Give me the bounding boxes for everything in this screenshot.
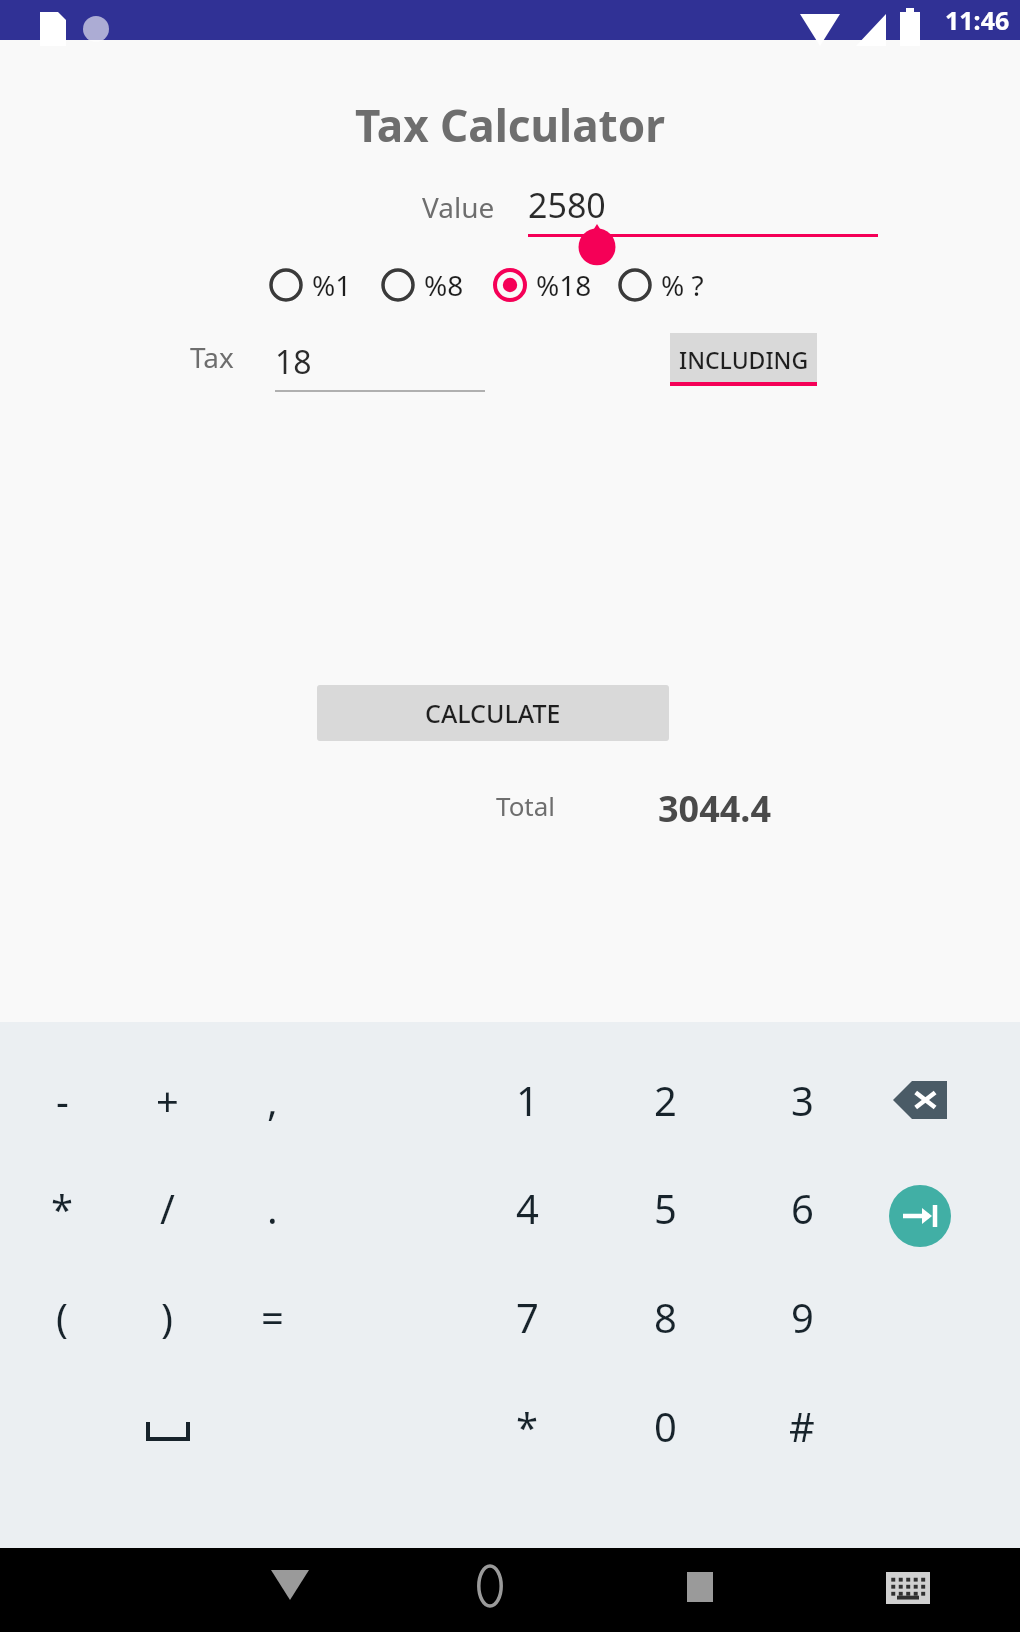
button[interactable]: 3 xyxy=(752,1066,852,1134)
staticText: 8 xyxy=(654,1290,677,1344)
button[interactable]: INCLUDING xyxy=(670,333,817,386)
staticText: Tax xyxy=(190,338,234,376)
staticText: / xyxy=(160,1181,175,1235)
button[interactable]: 7 xyxy=(477,1283,577,1351)
button[interactable]: 6 xyxy=(752,1174,852,1242)
button[interactable]: * xyxy=(12,1174,112,1242)
button[interactable]: 2580 xyxy=(528,182,878,237)
staticText: 6 xyxy=(791,1181,814,1235)
staticText: % ? xyxy=(661,266,704,304)
button[interactable]: %18 xyxy=(492,266,592,304)
staticText: Total xyxy=(496,788,556,823)
button[interactable]: ) xyxy=(117,1283,217,1351)
button[interactable]: 0 xyxy=(615,1392,715,1460)
button[interactable]: Home xyxy=(470,1566,510,1606)
staticText: 3 xyxy=(791,1073,814,1127)
button[interactable]: / xyxy=(117,1174,217,1242)
button[interactable]: 18 xyxy=(275,340,485,392)
button[interactable]: Backspace xyxy=(893,1081,947,1119)
staticText: 1 xyxy=(516,1073,539,1127)
staticText: 2580 xyxy=(528,182,606,228)
button[interactable]: CALCULATE xyxy=(317,685,669,741)
staticText: , xyxy=(267,1073,278,1127)
button[interactable]: Space xyxy=(146,1420,190,1442)
staticText: Tax Calculator xyxy=(355,95,665,155)
staticText: %1 xyxy=(312,266,352,304)
button[interactable]: 5 xyxy=(615,1174,715,1242)
button[interactable]: , xyxy=(222,1066,322,1134)
button[interactable]: # xyxy=(752,1392,852,1460)
staticText: 5 xyxy=(654,1181,677,1235)
staticText: = xyxy=(261,1290,284,1344)
button[interactable]: + xyxy=(117,1066,217,1134)
staticText: %18 xyxy=(536,266,592,304)
button[interactable]: 2 xyxy=(615,1066,715,1134)
staticText: CALCULATE xyxy=(425,696,561,730)
button[interactable]: % ? xyxy=(617,266,704,304)
staticText: 4 xyxy=(516,1181,539,1235)
staticText: Value xyxy=(422,188,495,226)
button[interactable]: %1 xyxy=(268,266,352,304)
button[interactable]: 4 xyxy=(477,1174,577,1242)
button[interactable]: Back xyxy=(271,1570,309,1600)
staticText: 18 xyxy=(275,340,312,384)
staticText: * xyxy=(516,1399,539,1453)
button[interactable]: Switch keyboard xyxy=(886,1572,930,1604)
button[interactable]: 9 xyxy=(752,1283,852,1351)
button[interactable]: Enter xyxy=(889,1185,951,1247)
staticText: # xyxy=(789,1399,815,1453)
staticText: . xyxy=(267,1181,278,1235)
staticText: 2 xyxy=(654,1073,677,1127)
button[interactable]: 1 xyxy=(477,1066,577,1134)
button[interactable]: ( xyxy=(12,1283,112,1351)
button[interactable]: = xyxy=(222,1283,322,1351)
staticText: * xyxy=(51,1181,74,1235)
staticText: - xyxy=(56,1073,69,1127)
staticText: 7 xyxy=(516,1290,539,1344)
staticText: 11:46 xyxy=(945,3,1010,37)
staticText: ( xyxy=(56,1290,68,1344)
button[interactable]: 8 xyxy=(615,1283,715,1351)
button[interactable]: . xyxy=(222,1174,322,1242)
button[interactable]: * xyxy=(477,1392,577,1460)
staticText: 3044.4 xyxy=(658,784,772,833)
staticText: %8 xyxy=(424,266,464,304)
staticText: + xyxy=(156,1073,179,1127)
staticText: INCLUDING xyxy=(679,344,809,375)
staticText: 9 xyxy=(791,1290,814,1344)
staticText: 0 xyxy=(654,1399,677,1453)
staticText: ) xyxy=(161,1290,173,1344)
button[interactable]: %8 xyxy=(380,266,464,304)
button[interactable]: - xyxy=(12,1066,112,1134)
